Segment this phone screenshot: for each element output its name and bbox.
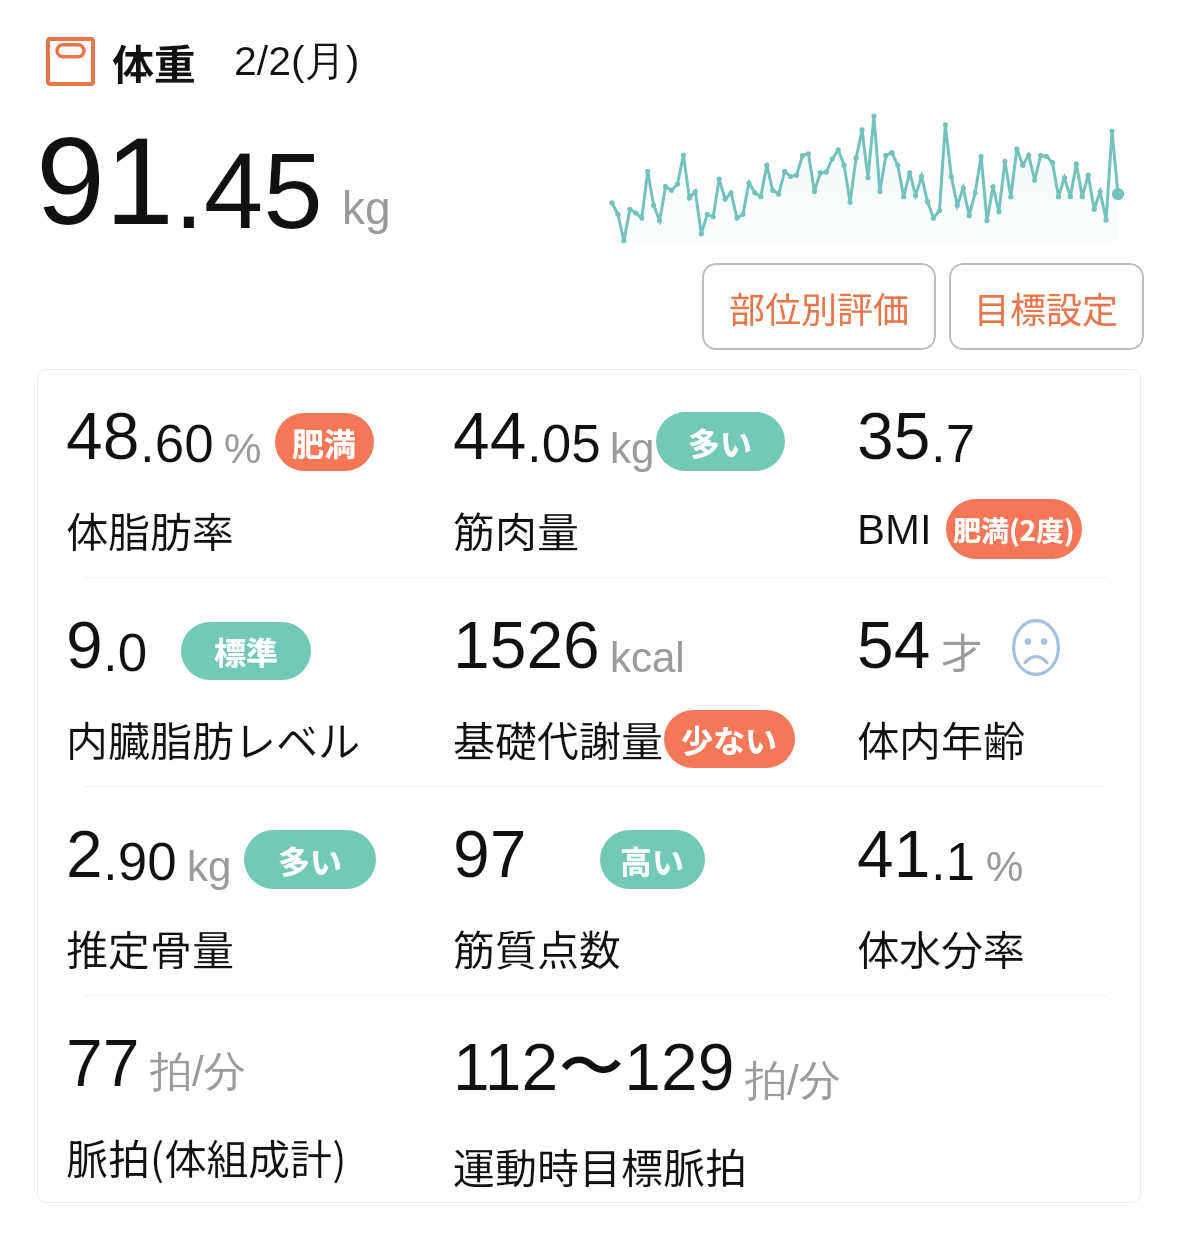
other: Weight scale: [46, 37, 95, 86]
staticText: 筋肉量: [453, 499, 580, 560]
staticText: BMI: [857, 506, 932, 553]
staticText: 脈拍(体組成計): [66, 1126, 347, 1187]
staticText: 体脂肪率: [66, 499, 235, 560]
staticText: .45: [174, 131, 323, 251]
staticText: 内臓脂肪レベル: [66, 708, 361, 769]
staticText: 標準: [214, 628, 279, 674]
staticText: 目標設定: [974, 281, 1119, 333]
staticText: kcal: [610, 634, 685, 681]
staticText: 77: [66, 1026, 140, 1100]
staticText: 41: [857, 817, 931, 891]
staticText: 体重: [112, 31, 197, 92]
staticText: .60: [140, 414, 214, 473]
staticText: .90: [103, 832, 177, 891]
staticText: kg: [610, 425, 655, 472]
staticText: 運動時目標脈拍: [453, 1135, 748, 1196]
staticText: %: [986, 843, 1024, 890]
staticText: 48: [66, 399, 140, 473]
staticText: 推定骨量: [66, 917, 235, 978]
staticText: 体水分率: [857, 917, 1026, 978]
staticText: 多い: [278, 837, 343, 883]
staticText: .0: [103, 623, 148, 682]
staticText: 肥満: [292, 419, 357, 465]
button[interactable]: 部位別評価: [702, 263, 936, 350]
staticText: 肥満(2度): [953, 509, 1075, 550]
staticText: 拍/分: [745, 1055, 841, 1108]
staticText: 97: [453, 817, 527, 891]
staticText: 基礎代謝量: [453, 708, 664, 769]
staticText: 高い: [620, 837, 685, 883]
staticText: 9: [66, 608, 103, 682]
staticText: %: [224, 425, 262, 472]
staticText: 部位別評価: [729, 281, 910, 333]
staticText: 体内年齢: [857, 708, 1026, 769]
staticText: 筋質点数: [453, 917, 622, 978]
staticText: 112〜129: [453, 1026, 735, 1109]
staticText: 少ない: [681, 716, 778, 762]
staticText: .7: [931, 414, 976, 473]
button[interactable]: 目標設定: [949, 263, 1144, 350]
staticText: 35: [857, 399, 931, 473]
staticText: 才: [941, 620, 984, 681]
staticText: 多い: [688, 419, 753, 465]
staticText: 1526: [453, 608, 600, 682]
staticText: kg: [187, 843, 232, 890]
staticText: 91: [36, 112, 174, 251]
staticText: 2: [66, 817, 103, 891]
staticText: 44: [453, 399, 527, 473]
staticText: 2/2(月): [234, 36, 360, 88]
staticText: kg: [342, 182, 391, 233]
staticText: 54: [857, 608, 931, 682]
staticText: .1: [931, 832, 976, 891]
staticText: .05: [527, 414, 601, 473]
staticText: 拍/分: [150, 1046, 246, 1099]
